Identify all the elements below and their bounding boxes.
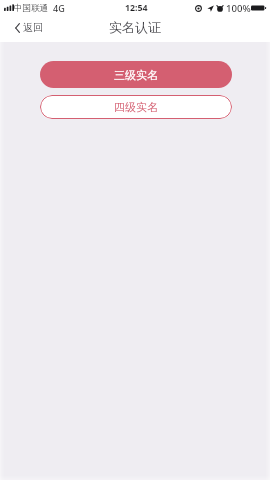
button[interactable]: 三级实名 — [40, 61, 232, 88]
button[interactable]: 返回 Back — [10, 16, 48, 39]
button[interactable]: 四级实名 — [40, 95, 232, 119]
staticText: 四级实名 — [114, 100, 158, 114]
staticText: 返回 — [23, 21, 43, 34]
staticText: 三级实名 — [114, 68, 158, 82]
staticText: 4G — [53, 2, 65, 14]
staticText: 实名认证 — [109, 19, 161, 35]
staticText: 中国联通 — [14, 3, 49, 14]
staticText: 12:54 — [125, 2, 148, 14]
staticText: 100% — [226, 2, 251, 15]
